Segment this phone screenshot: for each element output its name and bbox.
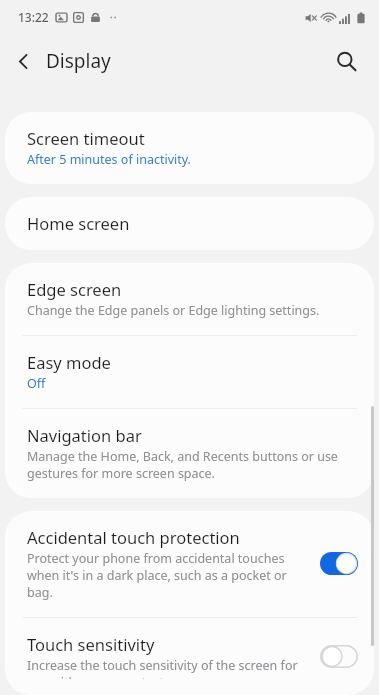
- button[interactable]: Accidental touch protection: [5, 511, 374, 617]
- staticText: Edge screen: [27, 278, 122, 300]
- button[interactable]: Edge screen: [5, 263, 374, 335]
- button[interactable]: Touch sensitivity: [5, 618, 374, 695]
- button[interactable]: Navigate up: [0, 38, 46, 84]
- staticText: Screen timeout: [27, 127, 145, 149]
- staticText: Display: [46, 48, 111, 74]
- staticText: After 5 minutes of inactivity.: [27, 151, 191, 168]
- button[interactable]: Search: [324, 39, 368, 83]
- staticText: Manage the Home, Back, and Recents butto…: [27, 448, 358, 482]
- button[interactable]: Home screen: [5, 197, 374, 250]
- staticText: Home screen: [27, 212, 130, 234]
- staticText: Change the Edge panels or Edge lighting …: [27, 302, 320, 319]
- button[interactable]: Navigation bar: [5, 409, 374, 498]
- staticText: Off: [27, 375, 46, 392]
- staticText: Accidental touch protection: [27, 526, 240, 548]
- staticText: Easy mode: [27, 351, 111, 373]
- staticText: Increase the touch sensitivity of the sc…: [27, 657, 310, 679]
- button[interactable]: Easy mode: [5, 336, 374, 408]
- button[interactable]: Switch, on: [320, 552, 358, 575]
- staticText: Touch sensitivity: [27, 633, 155, 655]
- button[interactable]: Screen timeout: [5, 112, 374, 184]
- staticText: Navigation bar: [27, 424, 142, 446]
- button[interactable]: Switch, off: [320, 645, 358, 668]
- staticText: Protect your phone from accidental touch…: [27, 550, 310, 601]
- staticText: 13:22: [18, 9, 49, 25]
